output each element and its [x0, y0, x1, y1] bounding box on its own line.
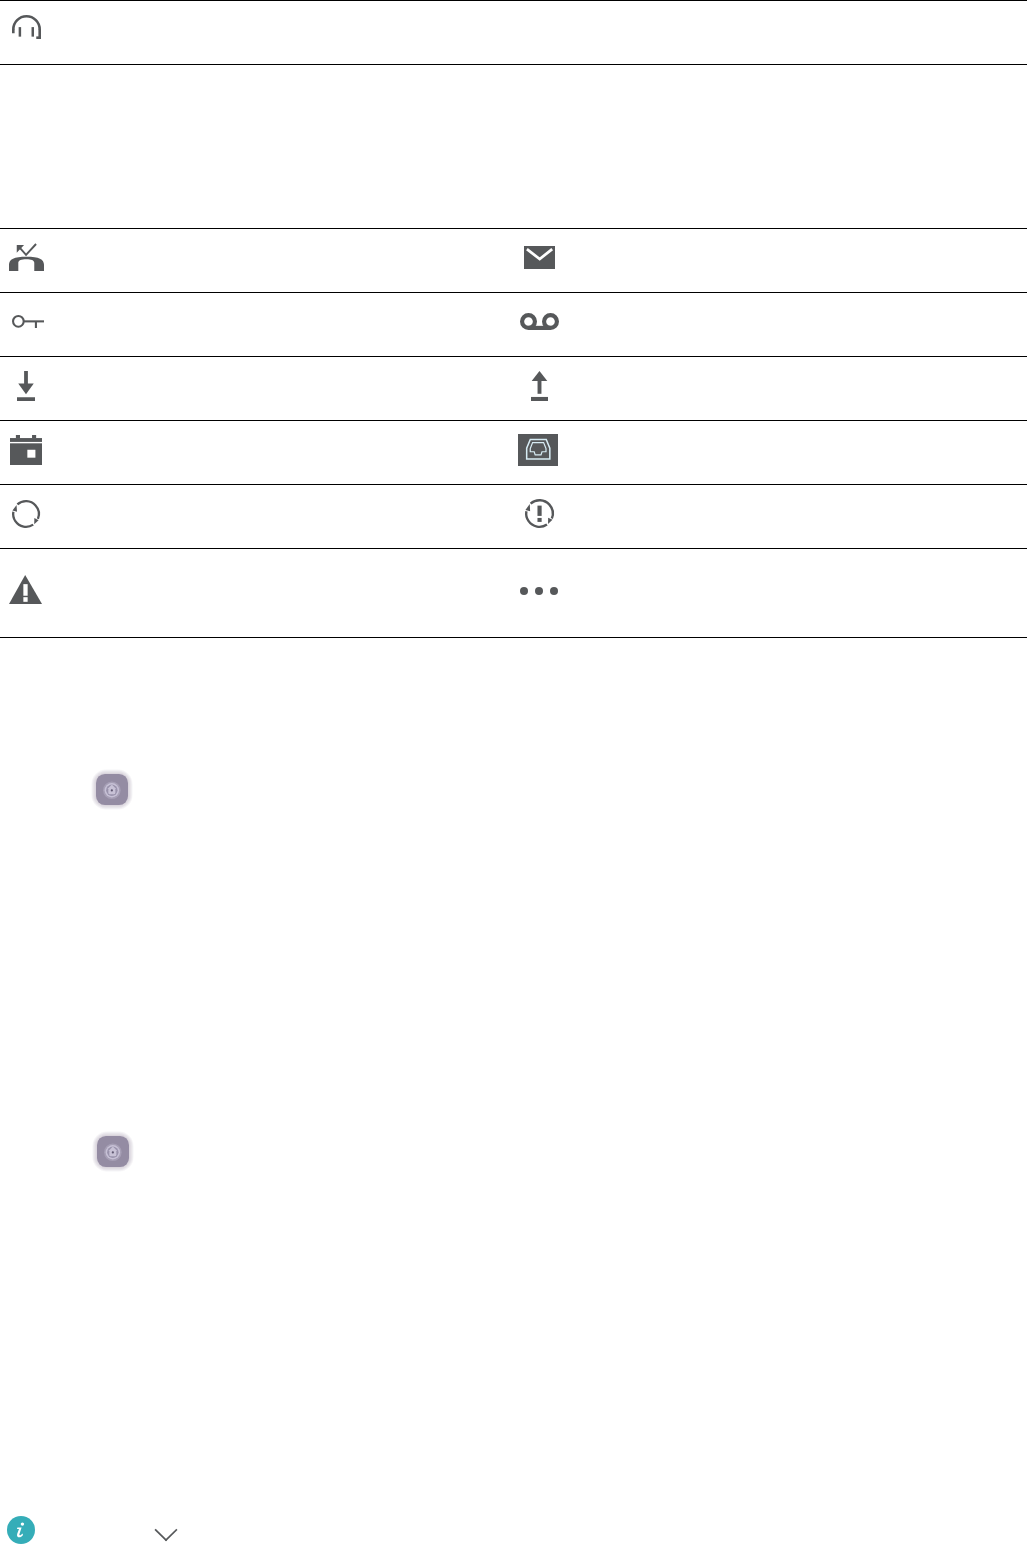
other: Sync [12, 500, 40, 528]
button[interactable]: VPN key [12, 315, 44, 328]
button[interactable]: Headset [12, 14, 41, 39]
button[interactable]: Info [7, 1516, 35, 1544]
button[interactable]: App icon [96, 774, 128, 805]
button[interactable]: Upload [531, 371, 548, 401]
other: Upload [531, 371, 548, 401]
other: Missed call [9, 244, 44, 271]
button[interactable]: Missed call [9, 244, 44, 271]
other: Sync problem [525, 499, 554, 528]
button[interactable]: Download [17, 371, 35, 401]
other: Download [17, 371, 35, 401]
button[interactable]: Calendar [10, 435, 42, 465]
button[interactable]: Move to inbox [518, 434, 558, 466]
button[interactable]: Sync [12, 500, 40, 528]
other: Warning [9, 575, 42, 604]
other: App icon [97, 1136, 129, 1167]
other: Mail [524, 246, 555, 269]
other: VPN key [12, 315, 44, 328]
other: Headset [12, 14, 41, 39]
button[interactable]: App icon [97, 1136, 129, 1167]
other: App icon [96, 774, 128, 805]
button[interactable]: Warning [9, 575, 42, 604]
button[interactable]: Mail [524, 246, 555, 269]
other: Move to inbox [518, 434, 558, 466]
other: Expand [155, 1529, 177, 1541]
button[interactable]: Expand [155, 1529, 177, 1541]
button[interactable]: More options [520, 587, 558, 595]
button[interactable]: Sync problem [525, 499, 554, 528]
button[interactable]: Voicemail [520, 313, 559, 330]
other: More options [520, 587, 558, 595]
other: Calendar [10, 435, 42, 465]
other: Info [7, 1516, 35, 1544]
other: Voicemail [520, 313, 559, 330]
